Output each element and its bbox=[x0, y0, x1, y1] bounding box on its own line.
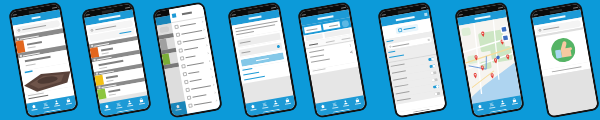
button[interactable] bbox=[337, 34, 354, 43]
button[interactable]: Tab 1 bbox=[487, 102, 496, 109]
button[interactable] bbox=[387, 36, 432, 50]
button[interactable]: Tab 1 bbox=[330, 102, 339, 109]
button[interactable] bbox=[178, 57, 213, 70]
button[interactable] bbox=[88, 20, 133, 34]
button[interactable]: Tab 1 bbox=[114, 102, 123, 109]
button[interactable]: Tab 0 bbox=[174, 104, 182, 111]
button[interactable] bbox=[173, 25, 208, 39]
button[interactable]: Tab 2 bbox=[52, 100, 61, 107]
button[interactable] bbox=[185, 96, 220, 110]
other: More bbox=[348, 43, 352, 47]
button[interactable] bbox=[177, 49, 212, 63]
button[interactable] bbox=[182, 80, 217, 94]
button[interactable]: Tab 2 bbox=[196, 100, 205, 107]
button[interactable]: Tab 2 bbox=[498, 100, 507, 107]
button[interactable]: Tab 3 bbox=[283, 98, 292, 105]
button[interactable] bbox=[237, 33, 281, 47]
button[interactable] bbox=[395, 23, 419, 34]
button[interactable] bbox=[180, 65, 215, 78]
button[interactable] bbox=[175, 41, 210, 55]
button[interactable]: Tab 0 bbox=[30, 104, 38, 111]
other: Share bbox=[350, 50, 353, 54]
button[interactable] bbox=[184, 88, 219, 102]
button[interactable] bbox=[97, 81, 147, 100]
button[interactable]: Tab 3 bbox=[208, 98, 217, 105]
button[interactable] bbox=[394, 89, 444, 105]
button[interactable] bbox=[392, 75, 441, 91]
button[interactable] bbox=[15, 20, 60, 34]
button[interactable]: Tab 2 bbox=[341, 100, 350, 107]
button[interactable]: Tab 0 bbox=[319, 104, 327, 111]
button[interactable]: Tab 3 bbox=[137, 98, 146, 105]
button[interactable]: Tab 3 bbox=[353, 98, 362, 105]
button[interactable]: Tab 3 bbox=[510, 98, 519, 105]
button[interactable] bbox=[536, 20, 581, 34]
button[interactable]: Add bbox=[341, 20, 349, 28]
button[interactable] bbox=[241, 52, 284, 67]
button[interactable] bbox=[90, 40, 140, 58]
button[interactable]: Tab 1 bbox=[260, 102, 269, 109]
button[interactable]: Tab 2 bbox=[125, 100, 134, 107]
button[interactable]: Tab 0 bbox=[249, 104, 257, 111]
button[interactable]: Tab 0 bbox=[476, 104, 484, 111]
button[interactable]: Tab 2 bbox=[271, 100, 280, 107]
button[interactable] bbox=[393, 82, 443, 98]
button[interactable]: Tab 1 bbox=[185, 102, 194, 109]
button[interactable] bbox=[94, 68, 144, 86]
button[interactable] bbox=[174, 33, 209, 47]
button[interactable] bbox=[181, 72, 216, 86]
button[interactable] bbox=[89, 27, 135, 42]
button[interactable] bbox=[171, 17, 206, 31]
button[interactable] bbox=[321, 37, 338, 46]
button[interactable] bbox=[15, 33, 66, 53]
button[interactable]: Menu bbox=[424, 13, 428, 16]
button[interactable] bbox=[389, 62, 439, 77]
button[interactable]: Tab 3 bbox=[64, 98, 73, 105]
button[interactable] bbox=[391, 68, 440, 84]
button[interactable]: Tab 0 bbox=[103, 104, 111, 111]
button[interactable]: Tab 1 bbox=[41, 102, 50, 109]
button[interactable] bbox=[305, 40, 322, 48]
button[interactable] bbox=[239, 42, 282, 57]
button[interactable] bbox=[388, 55, 438, 70]
